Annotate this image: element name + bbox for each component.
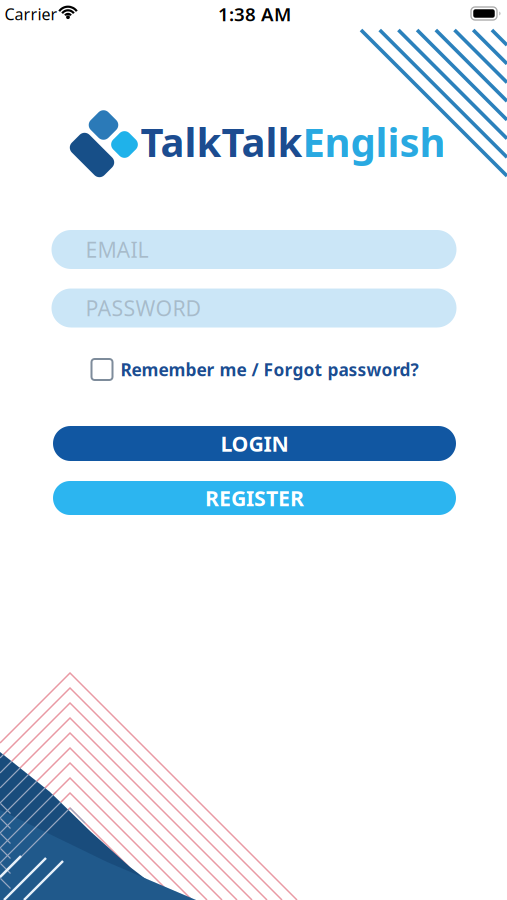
staticText: 1:38 AM <box>218 2 291 26</box>
button[interactable]: LOGIN <box>53 426 456 461</box>
staticText: Remember me <box>120 358 246 381</box>
button[interactable]: REGISTER <box>53 481 456 515</box>
staticText: Carrier <box>4 3 57 25</box>
staticText: / Forgot password? <box>246 358 418 381</box>
button[interactable]: Remember me <box>90 358 246 381</box>
staticText: REGISTER <box>205 484 304 512</box>
staticText: EMAIL <box>85 235 148 264</box>
staticText: PASSWORD <box>85 294 201 322</box>
staticText: LOGIN <box>220 429 288 458</box>
button[interactable]: / Forgot password? <box>246 358 418 381</box>
staticText: English <box>302 115 445 168</box>
staticText: TalkTalk <box>140 115 302 168</box>
